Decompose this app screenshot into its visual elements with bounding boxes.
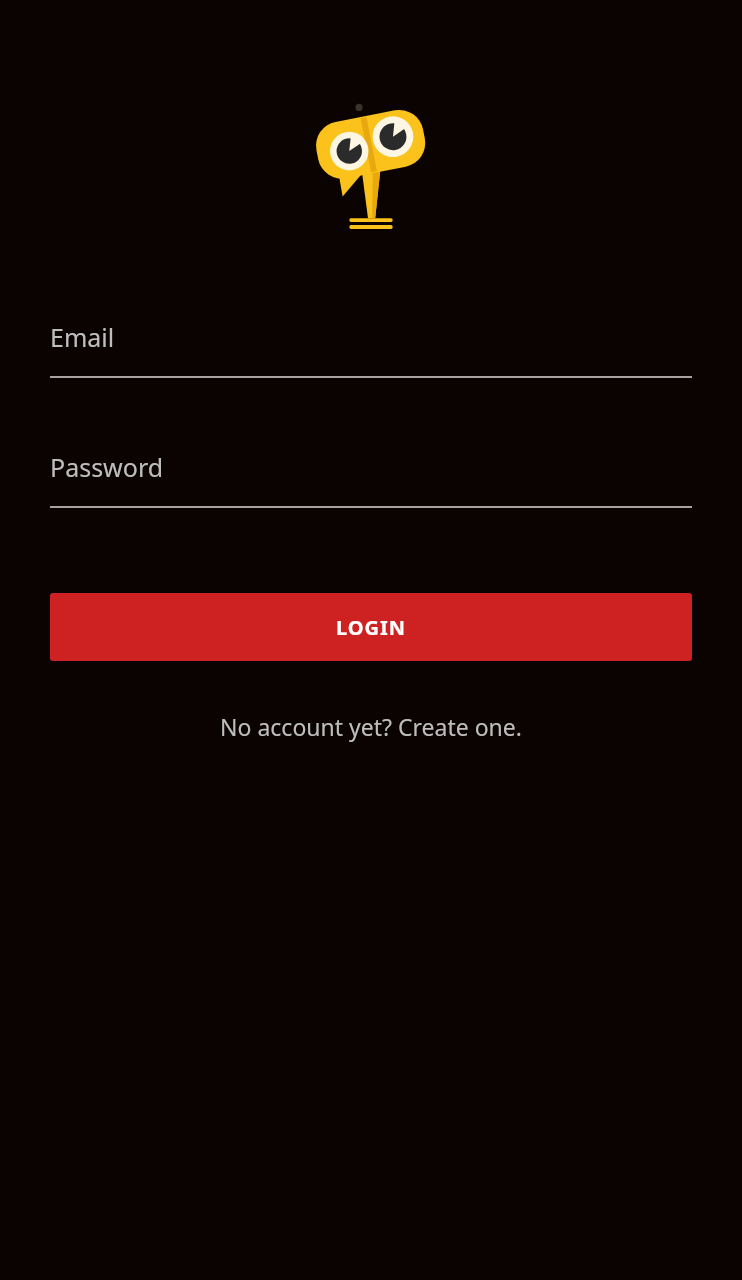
- button[interactable]: Password: [50, 450, 692, 508]
- staticText: No account yet? Create one.: [220, 711, 522, 742]
- staticText: Email: [50, 320, 115, 354]
- button[interactable]: No account yet? Create one.: [50, 706, 692, 746]
- staticText: Password: [50, 450, 164, 484]
- button[interactable]: LOGIN: [50, 593, 692, 661]
- button[interactable]: Email: [50, 320, 692, 378]
- staticText: LOGIN: [336, 614, 407, 641]
- other: App logo: [311, 100, 431, 235]
